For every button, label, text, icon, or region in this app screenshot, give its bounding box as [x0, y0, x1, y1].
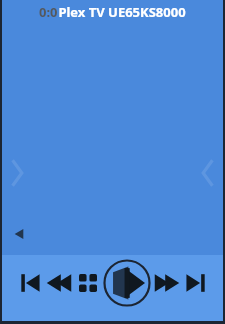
button[interactable]: Previous	[197, 153, 219, 193]
staticText: Plex TV UE65KS8000	[58, 3, 186, 21]
button[interactable]: Skip to start	[18, 266, 44, 300]
button[interactable]: Play	[102, 258, 152, 308]
button[interactable]: Next	[6, 153, 28, 193]
button[interactable]: Back	[12, 227, 26, 241]
staticText: 0:0	[39, 3, 58, 21]
button[interactable]: Skip to end	[182, 266, 208, 300]
button[interactable]: Apps	[74, 266, 102, 300]
button[interactable]: Rewind	[44, 266, 74, 300]
button[interactable]: Fast forward	[152, 266, 182, 300]
